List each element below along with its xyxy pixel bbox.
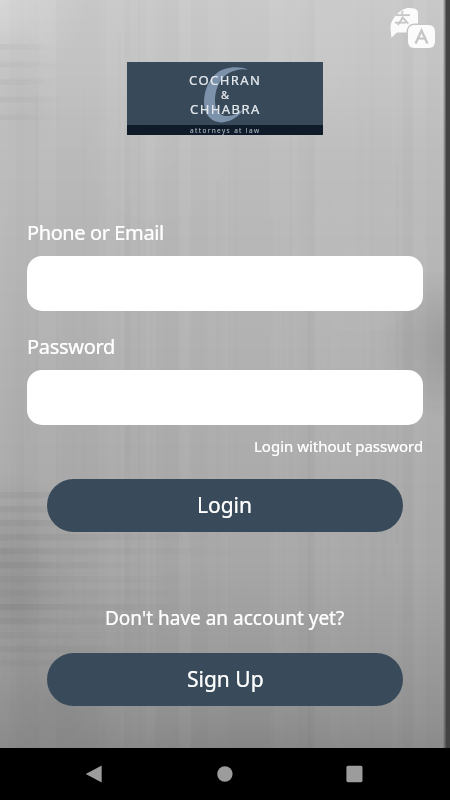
button[interactable]: Back: [69, 748, 115, 800]
button[interactable]: Password input: [27, 370, 423, 425]
button[interactable]: Login: [47, 479, 403, 532]
staticText: Don't have an account yet?: [105, 605, 345, 631]
staticText: attorneys at law: [190, 126, 261, 135]
staticText: Login without password: [254, 436, 424, 456]
staticText: Login: [197, 491, 253, 520]
staticText: Password: [27, 333, 116, 360]
button[interactable]: Login without password: [254, 436, 424, 456]
staticText: COCHRAN: [189, 71, 262, 89]
staticText: &: [221, 87, 230, 102]
button[interactable]: Sign Up: [47, 653, 403, 706]
button[interactable]: Phone or Email input: [27, 256, 423, 311]
staticText: CHHABRA: [190, 100, 261, 118]
button[interactable]: Home: [202, 748, 248, 800]
button[interactable]: Recent apps: [331, 748, 377, 800]
staticText: Phone or Email: [27, 219, 164, 246]
staticText: Sign Up: [187, 665, 264, 694]
button[interactable]: Translate: [389, 6, 433, 50]
